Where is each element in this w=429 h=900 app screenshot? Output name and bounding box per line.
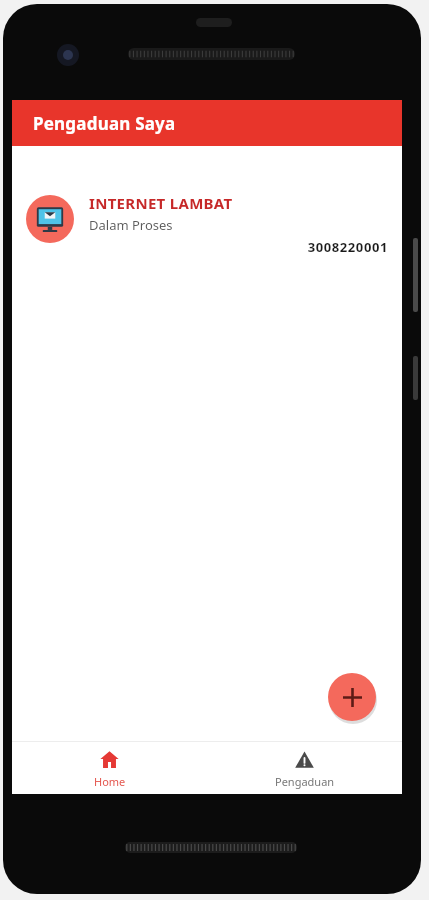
staticText: 3008220001: [89, 238, 388, 256]
button[interactable]: INTERNET LAMBAT: [12, 193, 402, 256]
button[interactable]: Add complaint: [328, 673, 376, 721]
button[interactable]: Pengaduan: [207, 742, 402, 794]
staticText: Home: [94, 774, 126, 789]
button[interactable]: Home: [12, 742, 207, 794]
staticText: Pengaduan Saya: [33, 112, 176, 135]
staticText: Pengaduan: [275, 774, 335, 789]
staticText: INTERNET LAMBAT: [89, 193, 233, 213]
staticText: Dalam Proses: [89, 216, 173, 234]
